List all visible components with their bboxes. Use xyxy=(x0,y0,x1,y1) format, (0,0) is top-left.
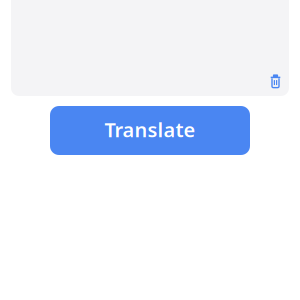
staticText: Translate xyxy=(104,116,195,143)
button[interactable]: Clear text xyxy=(259,66,289,96)
button[interactable]: Translate xyxy=(50,106,250,155)
